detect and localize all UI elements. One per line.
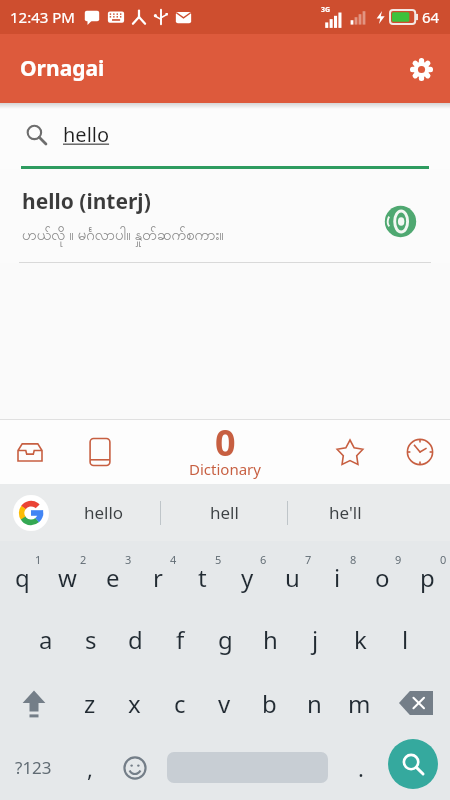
staticText: hello (interj) xyxy=(22,187,151,216)
button[interactable]: q xyxy=(0,547,45,607)
button[interactable] xyxy=(401,49,441,89)
staticText: 8 xyxy=(350,552,357,567)
button[interactable] xyxy=(382,671,450,735)
button[interactable]: hello (interj) xyxy=(22,187,422,247)
button[interactable]: c xyxy=(157,671,202,735)
staticText: Dictionary xyxy=(189,459,261,479)
button[interactable]: m xyxy=(337,671,382,735)
staticText: hello xyxy=(84,501,124,524)
staticText: r xyxy=(153,561,163,594)
button[interactable] xyxy=(388,739,438,789)
staticText: w xyxy=(58,561,77,594)
staticText: 3 xyxy=(125,552,132,567)
staticText: p xyxy=(420,561,435,594)
button[interactable]: y xyxy=(225,547,270,607)
staticText: Ornagai xyxy=(20,54,105,83)
button[interactable] xyxy=(0,484,62,541)
button[interactable]: h xyxy=(248,607,293,671)
staticText: hello xyxy=(63,121,110,148)
staticText: . xyxy=(358,753,364,783)
staticText: b xyxy=(262,687,277,720)
button[interactable] xyxy=(390,420,450,484)
staticText: u xyxy=(285,561,300,594)
button[interactable]: b xyxy=(247,671,292,735)
button[interactable] xyxy=(383,735,450,800)
staticText: z xyxy=(84,687,96,720)
button[interactable]: . xyxy=(338,735,383,800)
staticText: 7 xyxy=(305,552,312,567)
staticText: 12:43 PM xyxy=(10,7,75,27)
button[interactable]: w xyxy=(45,547,90,607)
button[interactable]: j xyxy=(293,607,338,671)
button[interactable]: o xyxy=(360,547,405,607)
staticText: q xyxy=(15,561,30,594)
staticText: 2 xyxy=(80,552,87,567)
staticText: n xyxy=(307,687,322,720)
staticText: 6 xyxy=(260,552,267,567)
button[interactable]: r xyxy=(135,547,180,607)
staticText: j xyxy=(312,623,319,656)
button[interactable]: a xyxy=(23,607,68,671)
button[interactable]: z xyxy=(67,671,112,735)
button[interactable] xyxy=(60,420,140,484)
button[interactable]: e xyxy=(90,547,135,607)
button[interactable]: x xyxy=(112,671,157,735)
staticText: t xyxy=(198,561,207,594)
button[interactable]: k xyxy=(338,607,383,671)
button[interactable]: hell xyxy=(161,484,287,541)
button[interactable] xyxy=(0,420,60,484)
staticText: ဟယ်လို ။ မင်္ဂလာပါ။ နှုတ်ဆက်စကား။ xyxy=(22,224,224,247)
staticText: , xyxy=(87,753,93,783)
staticText: y xyxy=(241,561,254,594)
staticText: 4 xyxy=(170,552,177,567)
staticText: d xyxy=(128,623,143,656)
staticText: m xyxy=(348,687,371,720)
button[interactable]: g xyxy=(203,607,248,671)
button[interactable]: , xyxy=(67,735,112,800)
button[interactable]: s xyxy=(68,607,113,671)
staticText: 0 xyxy=(440,552,447,567)
staticText: 64 xyxy=(422,7,440,27)
staticText: c xyxy=(174,687,186,720)
button[interactable]: v xyxy=(202,671,247,735)
button[interactable]: hello xyxy=(0,103,450,169)
staticText: 3G xyxy=(321,5,331,15)
staticText: e xyxy=(106,561,120,594)
button[interactable]: u xyxy=(270,547,315,607)
button[interactable]: n xyxy=(292,671,337,735)
staticText: f xyxy=(176,623,185,656)
staticText: ?123 xyxy=(15,756,52,779)
button[interactable] xyxy=(112,735,157,800)
button[interactable]: hello xyxy=(64,484,144,541)
button[interactable]: 0 xyxy=(140,420,310,484)
button[interactable] xyxy=(379,200,422,243)
button[interactable]: t xyxy=(180,547,225,607)
staticText: he'll xyxy=(329,501,362,524)
button[interactable]: i xyxy=(315,547,360,607)
staticText: s xyxy=(85,623,97,656)
staticText: k xyxy=(354,623,367,656)
staticText: a xyxy=(39,623,53,656)
staticText: x xyxy=(128,687,141,720)
staticText: 9 xyxy=(395,552,402,567)
button[interactable]: p xyxy=(405,547,450,607)
button[interactable]: f xyxy=(158,607,203,671)
staticText: 1 xyxy=(35,552,42,567)
staticText: g xyxy=(218,623,233,656)
staticText: 0 xyxy=(215,418,236,467)
button[interactable]: ?123 xyxy=(0,735,67,800)
button[interactable] xyxy=(0,671,67,735)
staticText: hell xyxy=(210,501,239,524)
staticText: 5 xyxy=(215,552,222,567)
staticText: v xyxy=(218,687,231,720)
button[interactable]: d xyxy=(113,607,158,671)
button[interactable]: l xyxy=(383,607,428,671)
button[interactable] xyxy=(310,420,390,484)
staticText: i xyxy=(334,561,341,594)
staticText: l xyxy=(402,623,409,656)
button[interactable]: he'll xyxy=(288,484,403,541)
staticText: o xyxy=(375,561,390,594)
staticText: h xyxy=(263,623,278,656)
